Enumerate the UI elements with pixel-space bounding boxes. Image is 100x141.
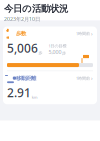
staticText: 5,000: [48, 48, 61, 56]
staticText: 1日の目標: [48, 43, 66, 48]
staticText: 5,006: [7, 40, 38, 56]
staticText: 移動距離: [16, 75, 36, 81]
staticText: 今日の活動状況: [4, 3, 68, 14]
staticText: ›: [91, 75, 93, 82]
button[interactable]: 歩数: [3, 26, 97, 70]
staticText: ›: [91, 30, 93, 37]
staticText: 歩: [62, 51, 66, 56]
staticText: 2023年2月10日: [4, 15, 40, 23]
staticText: 1時間前: [76, 31, 90, 36]
staticText: km: [32, 95, 38, 100]
staticText: 歩数: [16, 30, 26, 37]
staticText: 2.91: [7, 85, 31, 101]
staticText: 歩: [38, 50, 42, 55]
staticText: 1時間前: [76, 76, 90, 81]
button[interactable]: 移動距離: [3, 71, 97, 104]
